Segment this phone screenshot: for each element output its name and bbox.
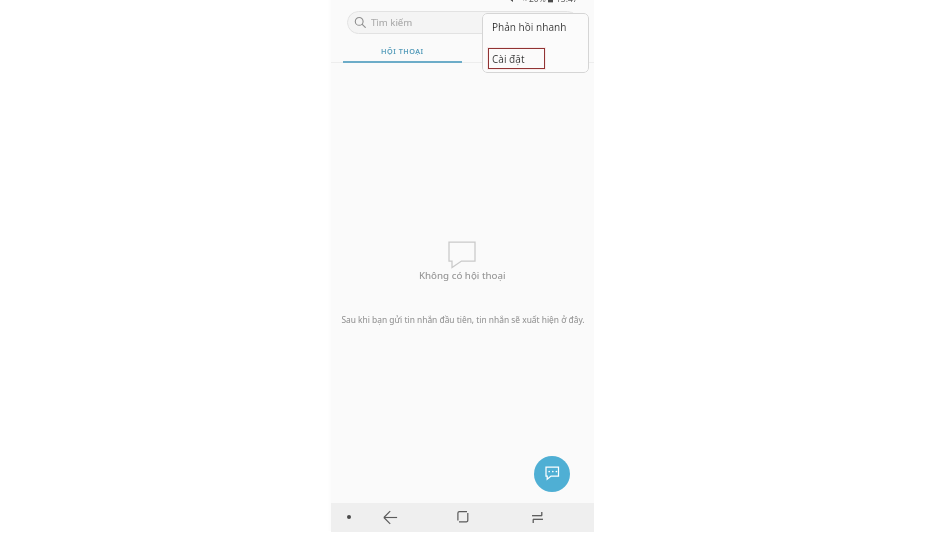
staticText: Phản hồi nhanh [492,20,567,34]
staticText: Không có hội thoại [419,269,506,282]
button[interactable]: Cài đặt [488,48,545,69]
staticText: 13:47 [556,0,578,5]
button[interactable]: Recents [449,503,477,531]
button[interactable]: Back [376,503,404,531]
staticText: 20% [529,0,546,5]
button[interactable]: Switch app [523,503,551,531]
button[interactable]: Tìm kiếm [347,11,579,34]
staticText: % [522,0,527,3]
button[interactable]: Phản hồi nhanh [482,13,589,40]
button[interactable]: Menu [335,503,363,531]
button[interactable]: New conversation [534,456,570,492]
staticText: HỘI THOẠI [381,46,424,56]
button[interactable]: HỘI THOẠI [343,39,462,63]
staticText: Tìm kiếm [371,16,413,29]
staticText: Cài đặt [492,52,525,66]
staticText: Sau khi bạn gửi tin nhắn đầu tiên, tin n… [341,314,585,325]
